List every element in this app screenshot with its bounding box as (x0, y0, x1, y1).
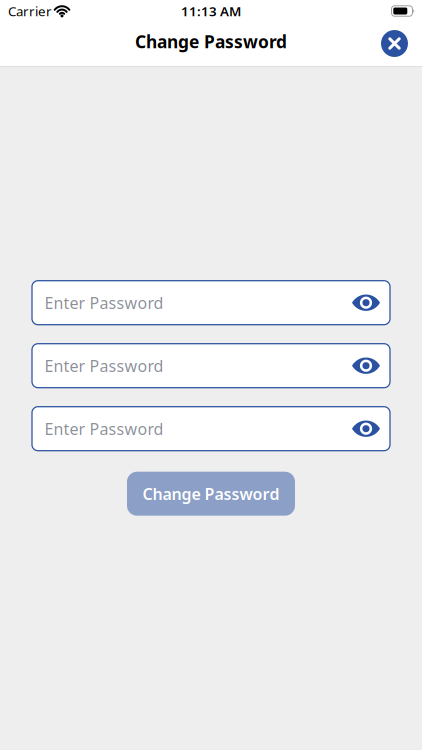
button[interactable]: Show Password (347, 407, 385, 451)
button[interactable]: Show Password (347, 344, 385, 388)
staticText: Change Password (135, 30, 287, 53)
staticText: 11:13 AM (181, 2, 241, 20)
staticText: Enter Password (44, 418, 163, 439)
staticText: Enter Password (44, 292, 163, 313)
button[interactable]: Close (381, 30, 408, 57)
staticText: Change Password (142, 483, 279, 504)
staticText: Carrier (8, 2, 52, 20)
button[interactable]: Change Password (127, 472, 295, 516)
button[interactable]: Show Password (347, 281, 385, 325)
staticText: Enter Password (44, 355, 163, 376)
